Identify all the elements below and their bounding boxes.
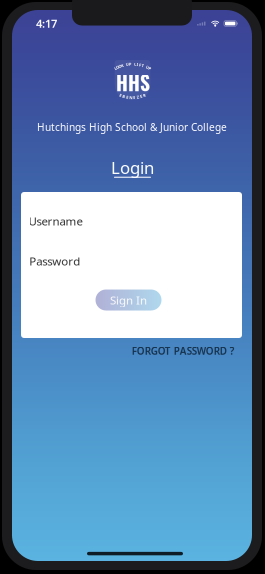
staticText: Login (111, 156, 154, 179)
staticText: Sign In (110, 292, 147, 308)
staticText: FORGOT PASSWORD ? (132, 344, 235, 358)
staticText: Hutchings High School & Junior College (37, 120, 227, 134)
staticText: P (129, 61, 131, 67)
staticText: I (137, 62, 139, 67)
staticText: F (139, 62, 141, 67)
staticText: E (140, 94, 142, 99)
staticText: E (126, 94, 128, 100)
staticText: T (142, 63, 144, 68)
staticText: Username (29, 213, 83, 229)
staticText: E (133, 95, 135, 100)
staticText: L (114, 66, 116, 71)
staticText: E (119, 92, 121, 98)
staticText: L (134, 61, 136, 67)
staticText: Z (137, 94, 139, 100)
staticText: 4:17 (36, 16, 57, 31)
staticText: U (126, 62, 129, 67)
button[interactable]: Sign In (95, 289, 161, 310)
button[interactable]: FORGOT PASSWORD ? (125, 338, 242, 364)
staticText: N (129, 95, 132, 100)
staticText: R (143, 92, 146, 98)
staticText: P (149, 66, 151, 71)
staticText: U (146, 65, 149, 70)
staticText: B (122, 94, 125, 99)
staticText: O (116, 65, 119, 70)
staticText: K (121, 63, 124, 68)
staticText: Password (29, 253, 80, 269)
staticText: HHS (116, 68, 150, 97)
staticText: O (118, 64, 121, 69)
